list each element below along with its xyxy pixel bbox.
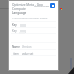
staticText: marcus.scott [34, 4, 50, 7]
staticText: A list of items has been added [12, 16, 48, 19]
button[interactable]: Account [50, 3, 55, 8]
staticText: value set [22, 52, 34, 56]
staticText: item [13, 52, 19, 56]
staticText: Language [12, 11, 27, 15]
button[interactable] [20, 30, 26, 33]
staticText: Optimize Meta - Goo [12, 3, 43, 7]
staticText: Compute [12, 7, 26, 11]
staticText: Key [12, 29, 17, 33]
staticText: Name [12, 45, 20, 49]
staticText: Key [12, 23, 17, 27]
staticText: Version [22, 45, 32, 49]
